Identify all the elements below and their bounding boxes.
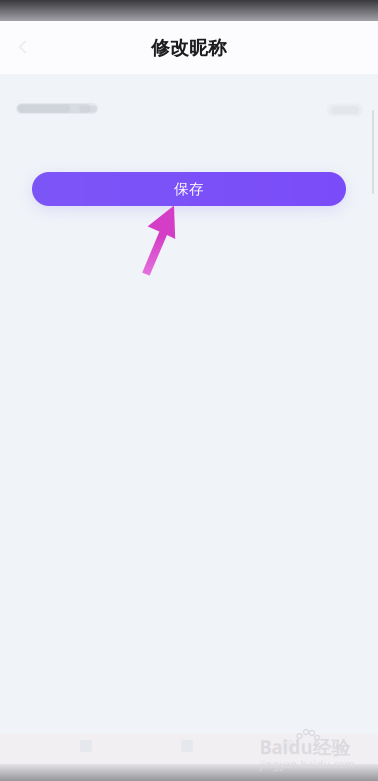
button[interactable]: Home <box>165 731 209 761</box>
button[interactable]: Back <box>266 731 310 761</box>
staticText: 修改昵称 <box>151 36 227 59</box>
staticText: Baidu经验 <box>259 735 350 759</box>
button[interactable]: Recents <box>64 731 108 761</box>
staticText: 保存 <box>174 180 204 198</box>
button[interactable]: 保存 <box>32 172 346 206</box>
staticText: jingyan.baidu.com <box>259 757 354 771</box>
